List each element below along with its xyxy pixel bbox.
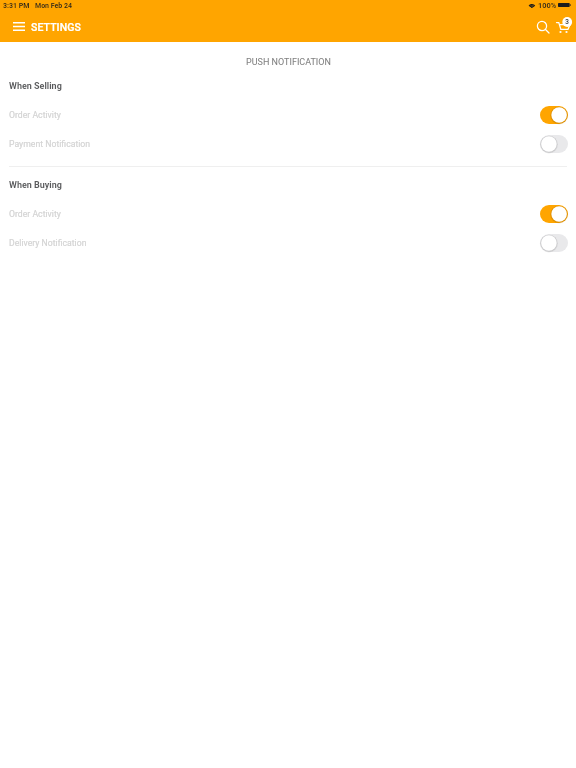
button[interactable]: Search [531, 13, 552, 42]
button[interactable]: Open navigation menu [8, 15, 30, 37]
staticText: 3:31 PM [3, 2, 30, 10]
button[interactable]: Shopping cart, 3 items [552, 13, 576, 42]
staticText: When Selling [9, 81, 62, 92]
staticText: Delivery Notification [9, 238, 87, 248]
button[interactable]: Delivery Notification [0, 229, 576, 257]
staticText: SETTINGS [31, 21, 81, 33]
staticText: Order Activity [9, 110, 61, 120]
staticText: Order Activity [9, 209, 61, 219]
button[interactable]: Order Activity [0, 101, 576, 129]
staticText: PUSH NOTIFICATION [246, 57, 331, 68]
button[interactable]: Order Activity [0, 200, 576, 228]
button[interactable]: Payment Notification [0, 130, 576, 158]
button[interactable]: Disabled [539, 134, 569, 154]
staticText: Mon Feb 24 [35, 2, 73, 10]
button[interactable]: Disabled [539, 233, 569, 253]
staticText: 100% [538, 1, 557, 10]
staticText: 3 [565, 18, 570, 26]
staticText: Payment Notification [9, 139, 91, 149]
button[interactable]: Enabled [539, 204, 569, 224]
button[interactable]: Enabled [539, 105, 569, 125]
staticText: When Buying [9, 180, 62, 191]
